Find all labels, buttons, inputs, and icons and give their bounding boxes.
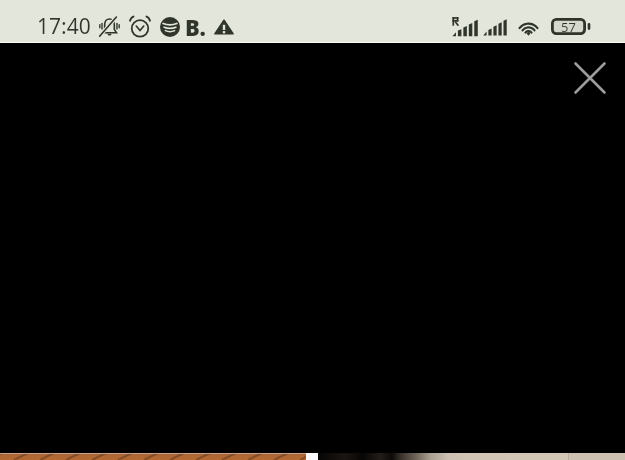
button[interactable]: Close	[566, 54, 614, 102]
staticText: B.	[185, 12, 206, 42]
button[interactable]	[0, 453, 306, 460]
staticText: 17:40	[37, 12, 91, 41]
button[interactable]	[318, 453, 466, 460]
staticText: 57	[551, 18, 586, 35]
